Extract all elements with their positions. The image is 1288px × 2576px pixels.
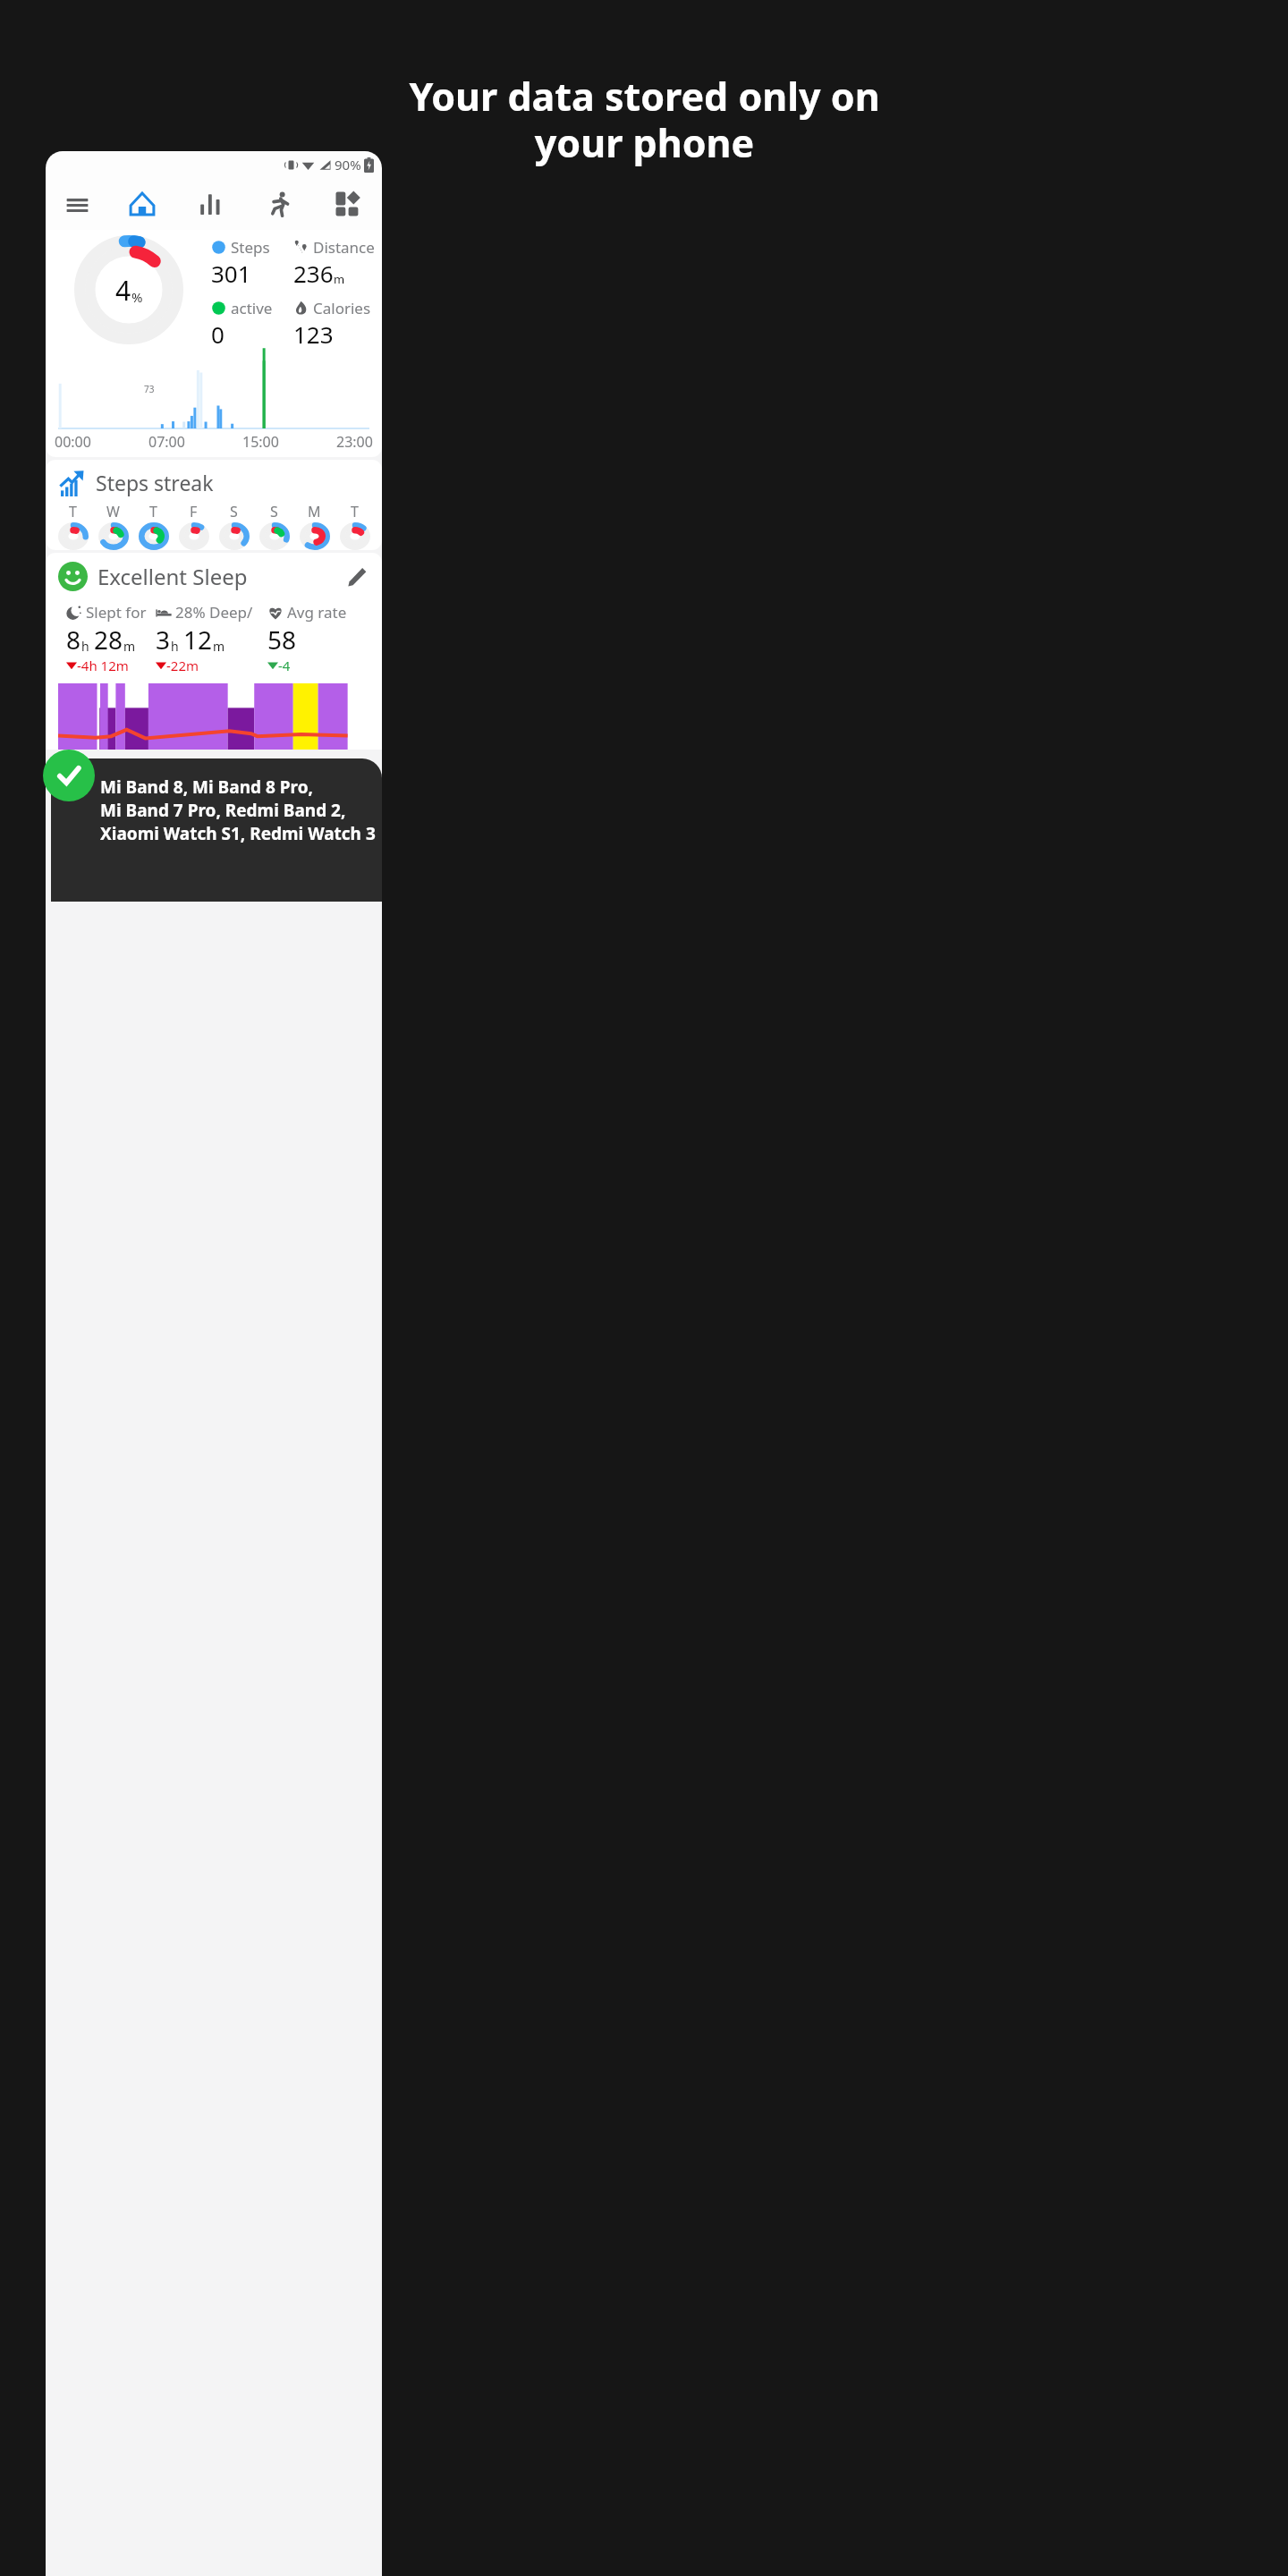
button[interactable]: M — [294, 502, 335, 550]
button[interactable]: Statistics — [176, 178, 244, 230]
staticText: Steps streak — [96, 469, 214, 496]
button[interactable]: F — [174, 502, 214, 550]
staticText: 28% Deep/RE... — [175, 602, 267, 623]
staticText: 90% — [335, 156, 361, 174]
button[interactable]: T — [335, 502, 375, 550]
staticText: 28 — [94, 623, 123, 657]
button[interactable]: active — [211, 298, 293, 350]
button[interactable]: Supported — [43, 750, 95, 801]
button[interactable]: Menu — [46, 178, 108, 230]
staticText: T — [69, 502, 77, 521]
staticText: 4 — [115, 272, 131, 309]
staticText: 3 — [156, 623, 171, 657]
staticText: 236 — [293, 258, 334, 289]
staticText: m — [334, 271, 345, 287]
staticText: 12 — [183, 623, 213, 657]
button[interactable]: S — [214, 502, 254, 550]
button[interactable]: Home — [108, 178, 176, 230]
staticText: 0 — [211, 318, 225, 350]
staticText: 07:00 — [148, 432, 185, 452]
staticText: Excellent Sleep — [97, 562, 248, 591]
staticText: S — [230, 502, 238, 521]
staticText: M — [308, 502, 321, 521]
button[interactable]: 28% Deep/RE... — [156, 602, 267, 674]
staticText: m — [123, 638, 136, 655]
staticText: 8 — [66, 623, 81, 657]
staticText: T — [351, 502, 359, 521]
button[interactable]: T — [53, 502, 93, 550]
staticText: -4h 12m — [77, 657, 129, 674]
button[interactable]: T — [133, 502, 174, 550]
button[interactable]: Avg rate — [267, 602, 382, 674]
staticText: 58 — [267, 623, 297, 657]
staticText: 23:00 — [336, 432, 373, 452]
staticText: Steps — [231, 237, 270, 258]
button[interactable]: Steps streak — [46, 460, 382, 550]
staticText: 73 — [144, 383, 155, 395]
button[interactable]: Calories — [293, 298, 377, 350]
staticText: Your data stored only on your phone — [409, 70, 880, 168]
staticText: -4 — [278, 657, 291, 674]
staticText: 15:00 — [242, 432, 279, 452]
button[interactable]: Widgets — [313, 178, 382, 230]
staticText: Slept for — [86, 602, 147, 623]
staticText: Mi Band 7 Pro, Redmi Band 2, — [100, 799, 346, 822]
button[interactable]: Distance — [293, 237, 377, 289]
staticText: % — [131, 288, 143, 306]
staticText: F — [190, 502, 198, 521]
staticText: Avg rate — [287, 602, 347, 623]
button[interactable]: Edit — [344, 564, 369, 589]
button[interactable]: Slept for — [66, 602, 156, 674]
staticText: 123 — [293, 318, 334, 350]
staticText: Distance — [313, 237, 375, 258]
staticText: 301 — [211, 258, 251, 289]
button[interactable]: S — [254, 502, 294, 550]
staticText: T — [149, 502, 157, 521]
staticText: 00:00 — [55, 432, 91, 452]
staticText: active — [231, 298, 273, 318]
staticText: Xiaomi Watch S1, Redmi Watch 3 — [100, 822, 376, 845]
staticText: S — [270, 502, 278, 521]
button[interactable]: Workout — [244, 178, 313, 230]
staticText: h — [171, 638, 179, 655]
staticText: -22m — [166, 657, 199, 674]
staticText: W — [106, 502, 120, 521]
staticText: h — [81, 638, 89, 655]
staticText: Calories — [313, 298, 371, 318]
button[interactable]: Excellent Sleep — [46, 553, 382, 750]
button[interactable]: 4 — [46, 230, 382, 457]
staticText: m — [213, 638, 225, 655]
staticText: Mi Band 8, Mi Band 8 Pro, — [100, 775, 313, 799]
button[interactable]: Steps — [211, 237, 293, 289]
button[interactable]: W — [93, 502, 133, 550]
